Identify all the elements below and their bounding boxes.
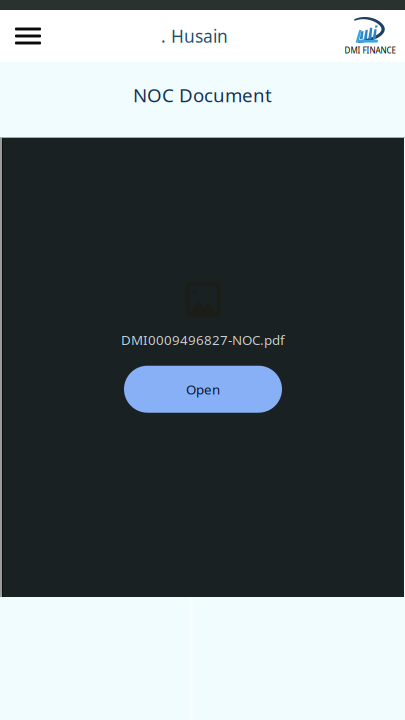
button[interactable]: DMI Finance	[337, 10, 405, 62]
staticText: DMI FINANCE	[344, 45, 395, 56]
staticText: DMI0009496827-NOC.pdf	[121, 331, 285, 349]
staticText: Open	[186, 380, 220, 398]
staticText: . Husain	[161, 24, 228, 47]
button[interactable]: Open	[124, 366, 282, 413]
staticText: NOC Document	[133, 83, 272, 107]
button[interactable]: Menu	[0, 10, 54, 62]
